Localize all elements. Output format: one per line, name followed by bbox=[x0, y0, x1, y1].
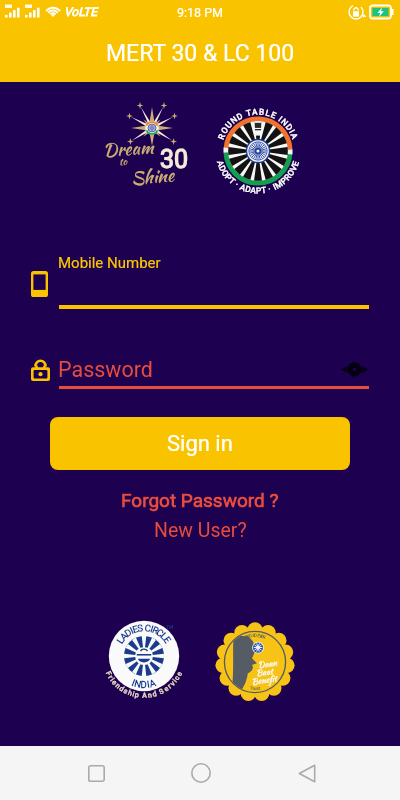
staticText: to bbox=[118, 154, 127, 169]
button[interactable]: Forgot Password ? bbox=[111, 486, 289, 514]
button[interactable]: New User? bbox=[144, 516, 257, 545]
staticText: Dream bbox=[102, 133, 155, 163]
staticText: New User? bbox=[154, 519, 247, 542]
button[interactable]: Recent apps bbox=[70, 746, 122, 800]
button[interactable]: Sign in bbox=[50, 417, 350, 470]
staticText: MERT 30 & LC 100 bbox=[106, 40, 295, 67]
staticText: Forgot Password ? bbox=[121, 489, 279, 511]
button[interactable]: Back bbox=[281, 746, 333, 800]
button[interactable]: Home bbox=[175, 746, 227, 800]
staticText: 9:18 PM bbox=[177, 5, 224, 20]
staticText: Mobile Number bbox=[58, 254, 161, 272]
staticText: Shine bbox=[130, 161, 176, 191]
staticText: Password bbox=[58, 357, 153, 382]
staticText: Sign in bbox=[167, 431, 233, 457]
button[interactable]: Show password bbox=[334, 355, 374, 383]
staticText: 30 bbox=[160, 145, 189, 174]
staticText: VoLTE bbox=[64, 5, 98, 19]
